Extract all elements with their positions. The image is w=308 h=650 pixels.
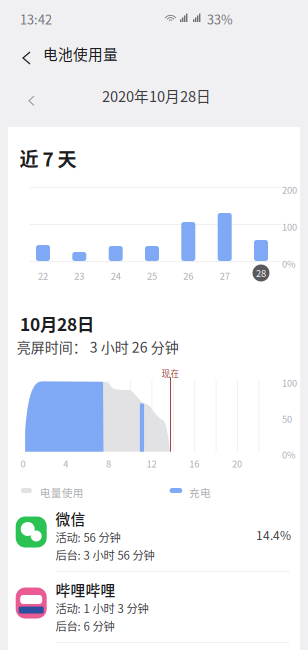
staticText: 28 [256, 266, 266, 280]
staticText: 微信 [55, 508, 85, 529]
button[interactable]: 哔哩哔哩 [8, 581, 300, 650]
staticText: 电量使用 [40, 485, 84, 500]
staticText: 0% [282, 257, 296, 270]
staticText: 10月28日 [20, 311, 94, 336]
staticText: 0% [282, 448, 296, 461]
staticText: 100 [282, 220, 297, 233]
staticText: 200 [282, 183, 297, 196]
staticText: 活动: 56 分钟 [55, 529, 120, 545]
staticText: 电池使用量 [43, 43, 118, 64]
staticText: 哔哩哔哩 [55, 579, 115, 600]
staticText: 24 [111, 269, 121, 282]
button[interactable]: Back [15, 44, 38, 72]
staticText: 现在 [161, 367, 179, 379]
staticText: 8 [106, 457, 111, 470]
staticText: 16 [189, 457, 199, 470]
staticText: 后台: 3 小时 56 分钟 [55, 547, 154, 563]
staticText: 20 [232, 457, 242, 470]
staticText: 22 [38, 269, 48, 282]
staticText: 26 [183, 269, 193, 282]
staticText: 亮屏时间： 3 小时 26 分钟 [17, 336, 179, 357]
staticText: 2020年10月28日 [102, 85, 211, 106]
staticText: 33% [207, 10, 233, 28]
staticText: 近 7 天 [19, 144, 76, 172]
staticText: 4 [63, 457, 68, 470]
staticText: 100 [282, 376, 297, 389]
button[interactable]: Previous day [22, 89, 41, 112]
staticText: 27 [220, 269, 230, 282]
staticText: 0 [20, 457, 25, 470]
staticText: 50 [282, 412, 292, 425]
button[interactable]: 微信 [8, 510, 300, 581]
staticText: 12 [146, 457, 156, 470]
staticText: 后台: 6 分钟 [55, 618, 114, 634]
staticText: 活动: 1 小时 3 分钟 [55, 600, 148, 616]
staticText: 充电 [189, 485, 211, 500]
staticText: 13:42 [20, 10, 52, 28]
staticText: 14.4% [256, 526, 291, 543]
staticText: 23 [74, 269, 84, 282]
staticText: 25 [147, 269, 157, 282]
